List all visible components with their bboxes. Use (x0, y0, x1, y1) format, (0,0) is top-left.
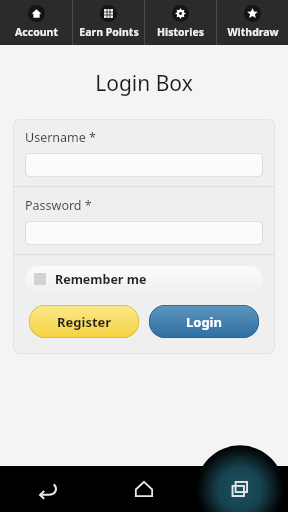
staticText: Earn Points (79, 25, 139, 39)
staticText: Withdraw (227, 25, 279, 39)
staticText: Login Box (0, 69, 288, 98)
button[interactable] (25, 153, 263, 177)
staticText: Username * (25, 129, 96, 146)
staticText: Register (57, 313, 112, 331)
staticText: Account (15, 25, 58, 39)
button[interactable]: Recent apps (192, 466, 288, 512)
staticText: Histories (157, 25, 204, 39)
button[interactable]: Home (96, 466, 192, 512)
staticText: Remember me (55, 271, 147, 288)
button[interactable]: Back (0, 466, 96, 512)
button[interactable]: Remember me (25, 266, 263, 292)
button[interactable] (25, 221, 263, 245)
staticText: Password * (25, 197, 92, 214)
button[interactable]: Account (0, 0, 72, 45)
staticText: Login (186, 313, 222, 331)
button[interactable]: Histories (145, 0, 216, 45)
button[interactable]: Login (149, 305, 259, 338)
button[interactable]: Register (29, 305, 139, 338)
button[interactable]: Withdraw (217, 0, 288, 45)
button[interactable]: Earn Points (73, 0, 144, 45)
